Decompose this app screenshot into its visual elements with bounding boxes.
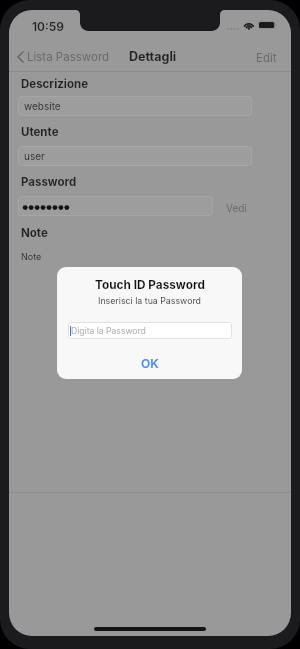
staticText: 10:59 (32, 19, 65, 34)
staticText: Utente (21, 125, 59, 139)
staticText: Dettagli (129, 49, 177, 64)
staticText: Note (21, 251, 42, 262)
button[interactable]: Lista Password (13, 47, 118, 67)
button[interactable] (18, 196, 213, 216)
button[interactable]: website (18, 96, 252, 116)
staticText: Touch ID Password (95, 278, 205, 292)
button[interactable]: user (18, 146, 252, 166)
button[interactable]: Digita la Password (68, 322, 232, 339)
staticText: user (24, 150, 45, 162)
button[interactable]: Vedi (220, 198, 253, 218)
staticText: Inserisci la tua Password (98, 295, 201, 306)
staticText: Descrizione (21, 77, 89, 91)
staticText: Password (21, 175, 77, 189)
button[interactable]: OK (109, 352, 191, 374)
staticText: OK (141, 356, 159, 371)
staticText: Note (21, 226, 48, 240)
staticText: website (24, 100, 61, 112)
button[interactable]: Edit (247, 46, 286, 70)
staticText: Lista Password (27, 50, 110, 64)
staticText: Digita la Password (71, 326, 146, 336)
